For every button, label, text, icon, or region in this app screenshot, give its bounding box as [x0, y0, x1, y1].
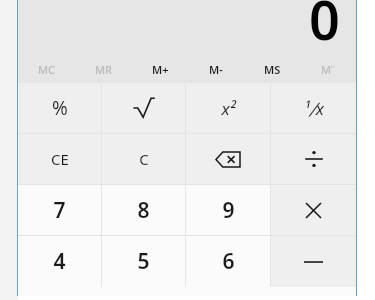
button[interactable]: MS: [244, 56, 300, 83]
button[interactable]: 7: [18, 185, 101, 235]
button[interactable]: 6: [186, 236, 270, 287]
button[interactable]: 5: [102, 236, 185, 287]
staticText: ¹∕x: [304, 97, 324, 120]
button[interactable]: Backspace: [186, 134, 270, 184]
staticText: %: [52, 95, 68, 121]
button[interactable]: MC: [18, 56, 75, 83]
staticText: 9: [222, 196, 235, 225]
button[interactable]: 8: [102, 185, 185, 235]
button[interactable]: Minus: [271, 236, 356, 287]
staticText: C: [139, 149, 149, 169]
staticText: MS: [264, 62, 281, 77]
button[interactable]: ¹∕x: [271, 83, 356, 133]
button[interactable]: Square root: [102, 83, 185, 133]
button[interactable]: x²: [186, 83, 270, 133]
button[interactable]: CE: [18, 134, 101, 184]
staticText: MR: [95, 62, 113, 77]
staticText: x²: [221, 97, 236, 120]
button[interactable]: Multiply: [271, 185, 356, 235]
staticText: M˅: [321, 62, 335, 77]
button[interactable]: MR: [75, 56, 132, 83]
staticText: CE: [51, 149, 69, 169]
staticText: M+: [152, 62, 169, 77]
staticText: 4: [53, 247, 66, 276]
staticText: M-: [209, 62, 223, 77]
button[interactable]: %: [18, 83, 101, 133]
button[interactable]: M+: [132, 56, 188, 83]
staticText: 6: [222, 247, 235, 276]
button[interactable]: 9: [186, 185, 270, 235]
staticText: 8: [137, 196, 150, 225]
button[interactable]: M˅: [300, 56, 356, 83]
staticText: 0: [309, 0, 340, 42]
staticText: MC: [38, 62, 56, 77]
staticText: 7: [53, 196, 66, 225]
staticText: 5: [137, 247, 150, 276]
button[interactable]: Divide: [271, 134, 356, 184]
button[interactable]: C: [102, 134, 185, 184]
button[interactable]: 4: [18, 236, 101, 287]
button[interactable]: M-: [188, 56, 244, 83]
